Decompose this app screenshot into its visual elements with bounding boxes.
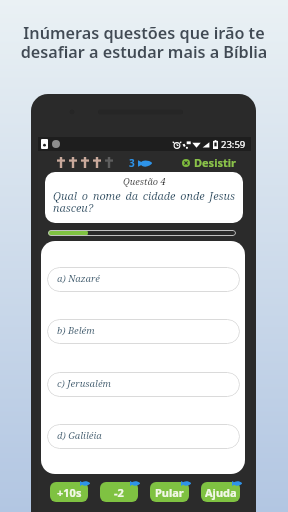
staticText: Pular: [155, 485, 184, 500]
button[interactable]: Ajuda: [201, 482, 240, 502]
staticText: Inúmeras questões que irão te desafiar a…: [0, 22, 288, 63]
button[interactable]: c) Jerusalém: [47, 372, 240, 397]
staticText: Desistir: [194, 155, 236, 170]
staticText: -2: [114, 485, 124, 500]
staticText: 23:59: [221, 138, 246, 151]
staticText: d) Galiléia: [57, 429, 102, 442]
staticText: +10s: [57, 485, 82, 500]
staticText: Ajuda: [205, 485, 237, 500]
staticText: Questão 4: [123, 175, 166, 188]
button[interactable]: a) Nazaré: [47, 267, 240, 292]
staticText: b) Belém: [57, 324, 95, 337]
staticText: a) Nazaré: [57, 272, 100, 285]
staticText: c) Jerusalém: [57, 377, 111, 390]
button[interactable]: +10s: [50, 482, 88, 502]
button[interactable]: Pular: [150, 482, 189, 502]
staticText: Qual o nome da cidade onde Jesus nasceu?: [53, 188, 235, 215]
button[interactable]: Desistir: [182, 155, 236, 170]
button[interactable]: d) Galiléia: [47, 424, 240, 449]
button[interactable]: b) Belém: [47, 319, 240, 344]
staticText: 3: [129, 156, 135, 170]
button[interactable]: -2: [100, 482, 138, 502]
